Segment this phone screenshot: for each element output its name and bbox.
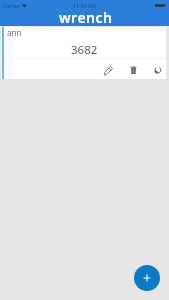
- staticText: wrench: [59, 8, 113, 24]
- staticText: Carrier: [3, 2, 20, 9]
- button[interactable]: Edit: [101, 63, 115, 77]
- button[interactable]: Reset: [151, 63, 165, 77]
- button[interactable]: ann: [1, 27, 166, 79]
- button[interactable]: Delete: [126, 63, 140, 77]
- button[interactable]: Add: [134, 265, 160, 291]
- staticText: ann: [7, 27, 22, 38]
- staticText: 11:54 AM: [73, 2, 96, 9]
- staticText: 3682: [71, 42, 98, 58]
